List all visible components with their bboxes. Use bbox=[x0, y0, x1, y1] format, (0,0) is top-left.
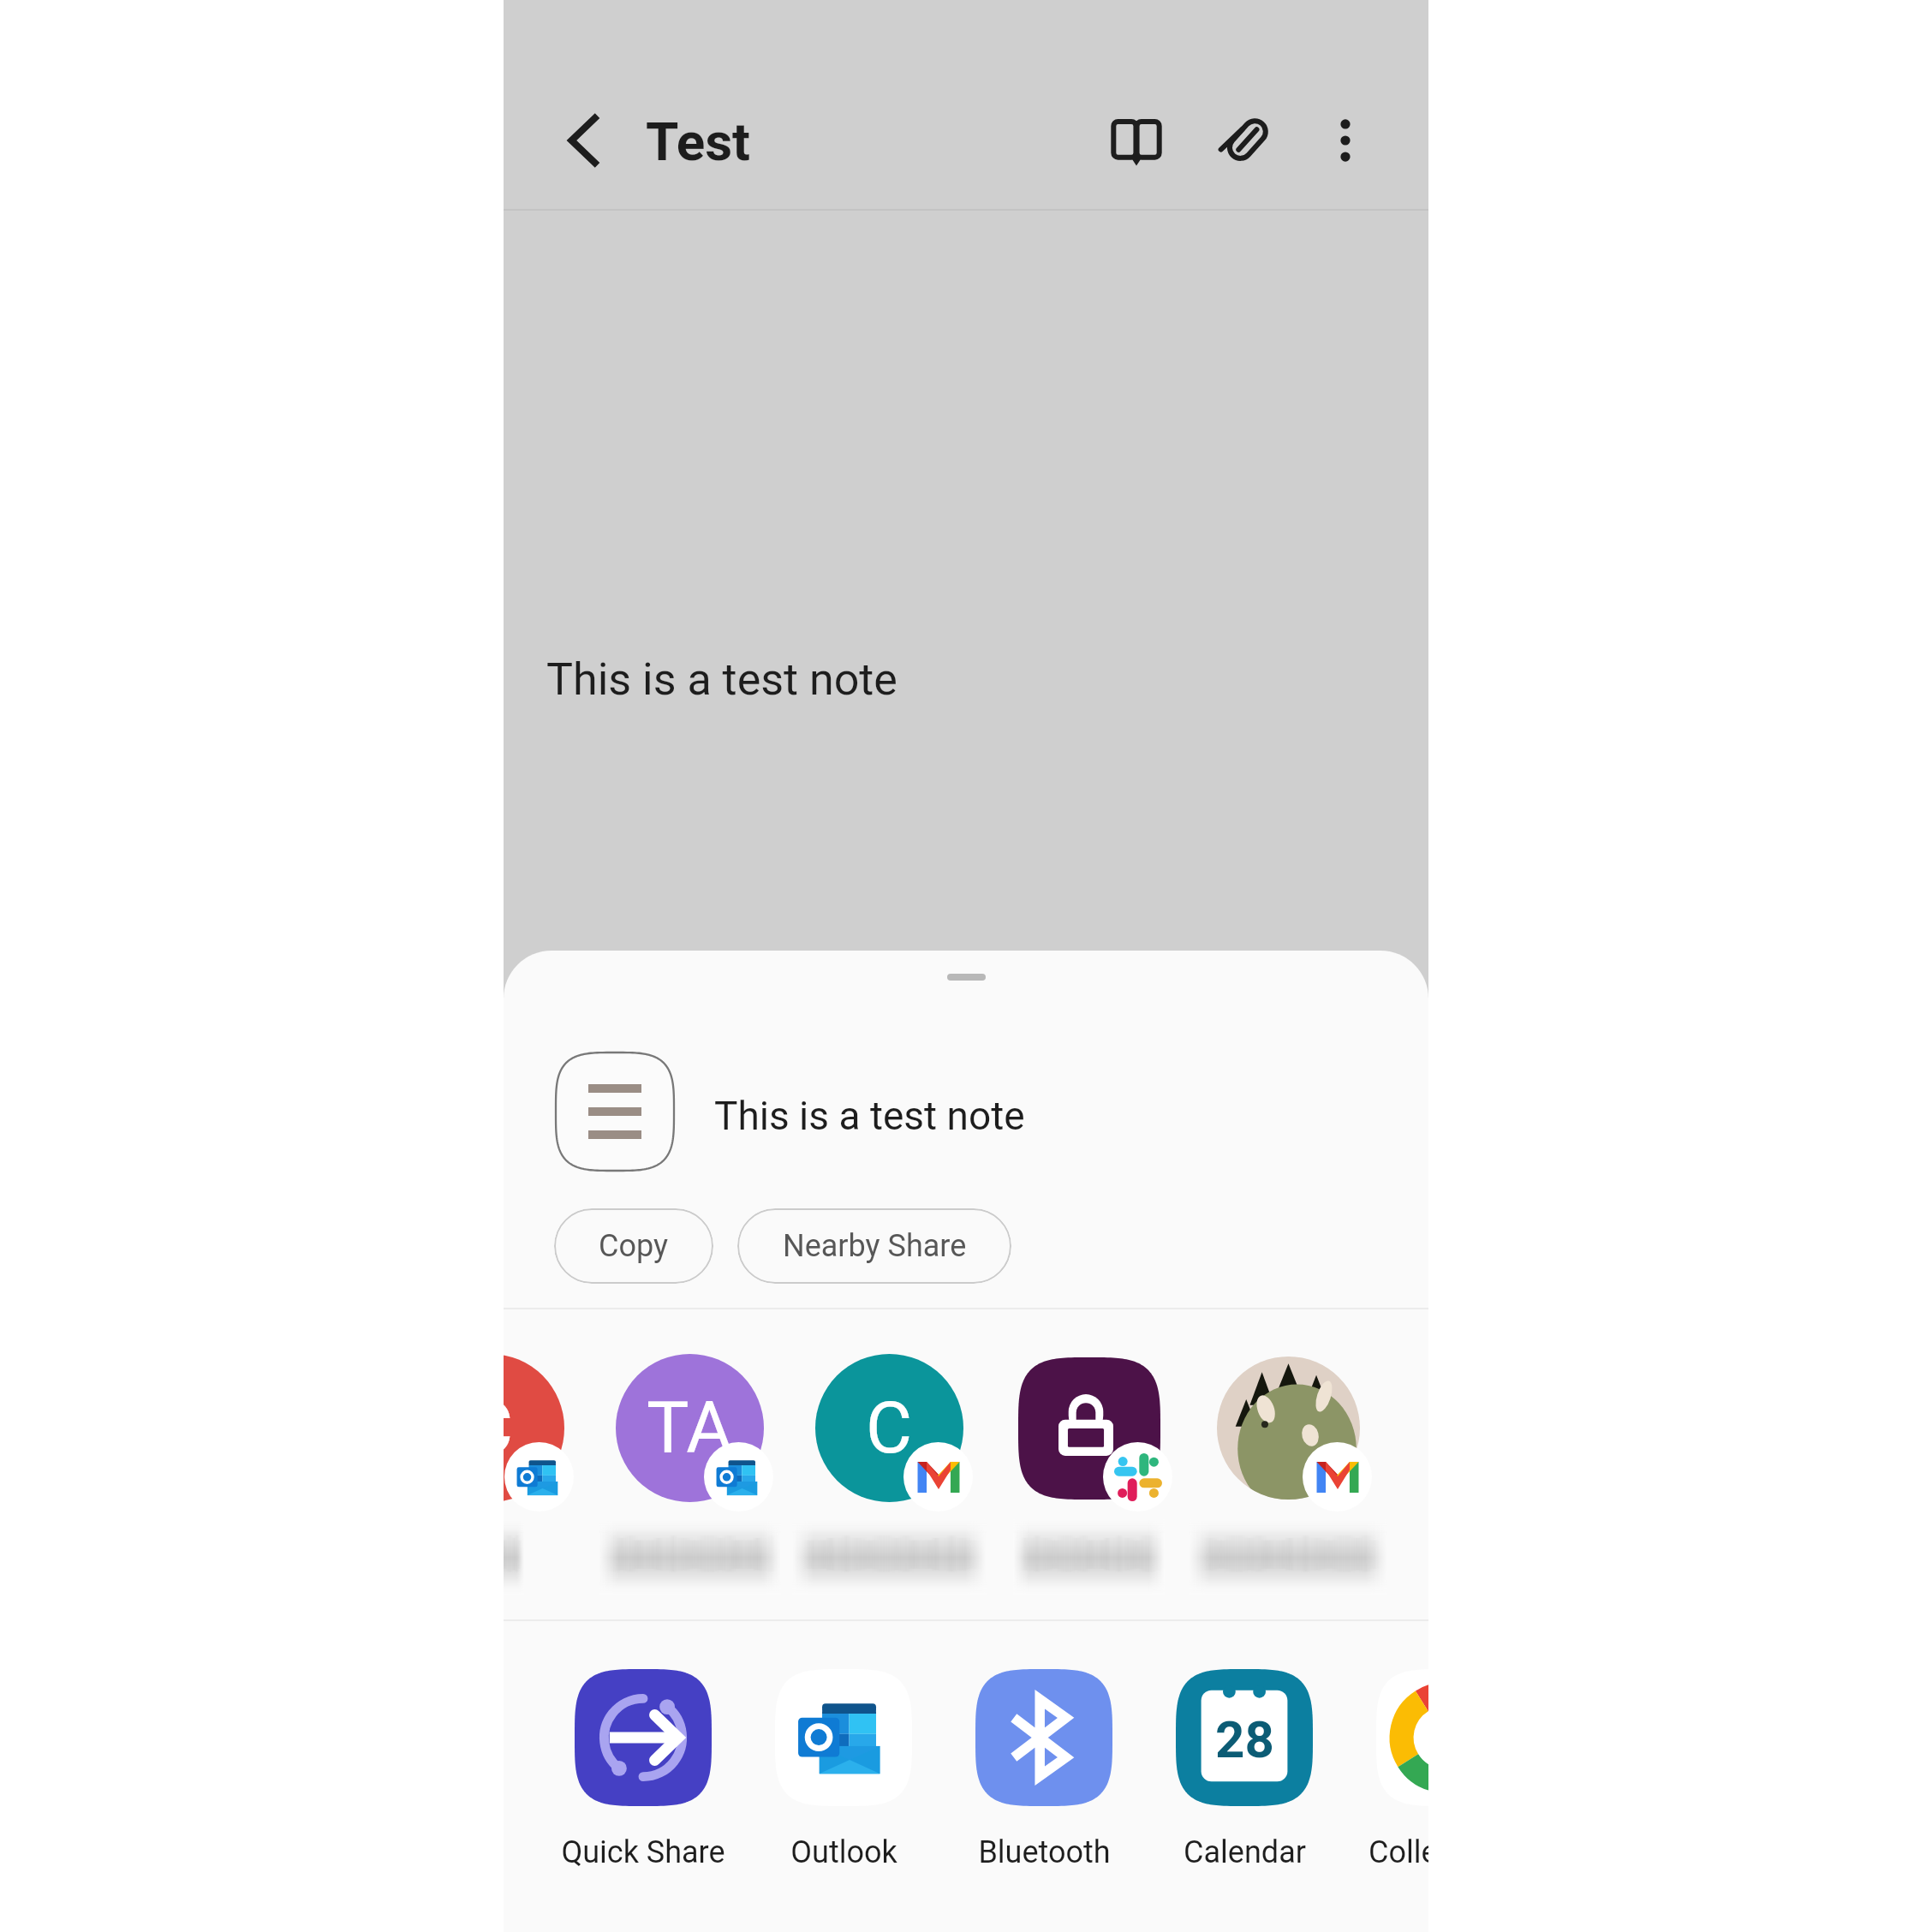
button[interactable] bbox=[1189, 1330, 1388, 1587]
button[interactable]: Back bbox=[542, 99, 624, 182]
staticText: 28 bbox=[1215, 1709, 1274, 1769]
button[interactable]: TA bbox=[590, 1330, 790, 1587]
staticText: Quick Share bbox=[561, 1834, 725, 1870]
button[interactable]: C bbox=[504, 1330, 590, 1587]
staticText: C bbox=[866, 1386, 913, 1470]
staticText: Test bbox=[646, 110, 751, 173]
staticText: Outlook bbox=[790, 1834, 897, 1870]
button[interactable]: Attach file bbox=[1206, 99, 1288, 182]
staticText: Collections bbox=[1368, 1834, 1428, 1870]
button[interactable]: C bbox=[790, 1330, 989, 1587]
button[interactable] bbox=[743, 1650, 944, 1899]
staticText: This is a test note bbox=[714, 1093, 1025, 1139]
button[interactable] bbox=[989, 1330, 1189, 1587]
staticText: This is a test note bbox=[546, 653, 897, 706]
staticText: C bbox=[504, 1386, 514, 1470]
button[interactable]: Copy bbox=[554, 1208, 713, 1284]
button[interactable]: More options bbox=[1304, 99, 1386, 182]
button[interactable]: 28 bbox=[1144, 1650, 1345, 1899]
staticText: TA bbox=[647, 1386, 733, 1470]
staticText: Copy bbox=[599, 1228, 669, 1264]
staticText: Nearby Share bbox=[783, 1228, 967, 1264]
button[interactable] bbox=[543, 1650, 743, 1899]
staticText: Calendar bbox=[1184, 1834, 1306, 1870]
button[interactable]: Nearby Share bbox=[737, 1208, 1011, 1284]
button[interactable] bbox=[1345, 1650, 1428, 1899]
button[interactable]: Reading mode bbox=[1095, 99, 1178, 182]
button[interactable] bbox=[944, 1650, 1144, 1899]
staticText: Bluetooth bbox=[978, 1834, 1111, 1870]
